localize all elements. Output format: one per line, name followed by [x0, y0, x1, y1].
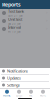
button[interactable]: More	[37, 89, 49, 98]
button[interactable]: Test bank	[0, 9, 50, 17]
button[interactable]: Settings	[0, 82, 50, 89]
staticText: Sun 21 Jan	[8, 14, 23, 17]
staticText: Fri 19 Jan	[8, 30, 21, 33]
button[interactable]: Unit test	[0, 17, 50, 25]
button[interactable]: Home	[1, 89, 13, 98]
staticText: Settings	[7, 82, 20, 88]
staticText: Me	[29, 94, 33, 97]
staticText: Logs	[16, 94, 22, 97]
staticText: Notifications	[7, 68, 28, 74]
staticText: Test bank	[8, 9, 24, 14]
button[interactable]: Logs	[13, 89, 25, 98]
staticText: Interval	[8, 25, 21, 30]
staticText: Reports	[2, 1, 21, 8]
staticText: More	[39, 94, 46, 97]
staticText: Updates	[7, 75, 21, 81]
button[interactable]: Interval	[0, 25, 50, 33]
button[interactable]: Me	[25, 89, 37, 98]
button[interactable]: Notifications	[0, 68, 50, 75]
button[interactable]: Updates	[0, 75, 50, 82]
staticText: Sat 20 Jan	[8, 22, 21, 25]
staticText: Unit test	[8, 17, 22, 22]
staticText: Home	[3, 94, 11, 97]
